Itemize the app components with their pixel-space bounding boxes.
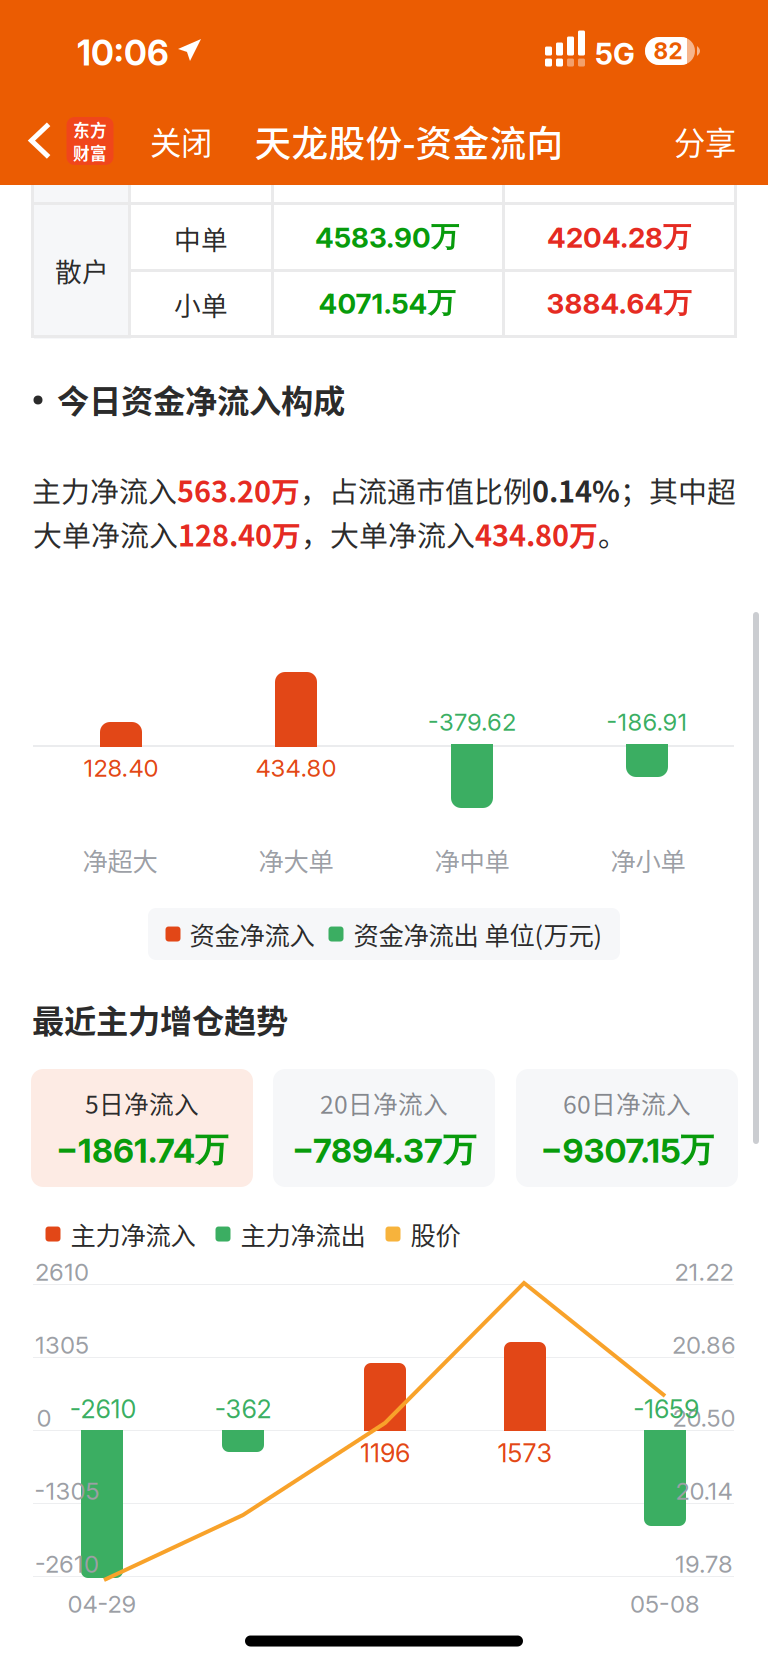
staticText: 60日净流入 [563,1085,691,1121]
button[interactable]: 60日净流入 [516,1069,738,1187]
staticText: 5G [595,36,635,72]
staticText: 20.50 [672,1403,735,1432]
staticText: 净中单 [434,842,509,878]
staticText: 主力净流入 [70,1216,195,1252]
staticText: 分享 [674,118,736,164]
staticText: ；其中超 [620,469,736,511]
staticText: −7894.37万 [292,1129,476,1171]
staticText: -2610 [35,1549,99,1578]
staticText: 21.22 [674,1257,733,1286]
staticText: 天龙股份-资金流向 [254,114,563,168]
staticText: 20.14 [675,1476,732,1505]
staticText: 128.40 [83,753,158,782]
staticText: 04-29 [67,1589,136,1618]
staticText: 净大单 [258,842,333,878]
button[interactable]: 20日净流入 [273,1069,495,1187]
staticText: 净小单 [610,842,685,878]
staticText: 1196 [360,1438,410,1468]
staticText: 资金净流入 [189,916,314,952]
button[interactable]: 5日净流入 [31,1069,253,1187]
staticText: ，占流通市值比例 [300,469,532,511]
staticText: -379.62 [428,707,516,736]
staticText: -2610 [69,1394,136,1424]
staticText: 股价 [410,1216,460,1252]
staticText: 东方 [73,117,107,141]
staticText: 关闭 [150,118,212,164]
staticText: 0 [36,1403,51,1432]
staticText: 。 [598,513,627,555]
button[interactable]: 关闭 [141,112,221,170]
staticText: 中单 [174,219,228,257]
staticText: 主力净流入 [32,469,177,511]
staticText: −9307.15万 [540,1129,713,1171]
staticText: 20.86 [672,1330,736,1359]
staticText: -362 [214,1394,271,1424]
staticText: 1573 [497,1438,552,1468]
button[interactable]: 分享 [665,112,745,170]
staticText: 资金净流出 单位(万元) [353,916,602,952]
staticText: 3884.64万 [546,285,691,321]
staticText: 主力净流出 [240,1216,365,1252]
staticText: 小单 [174,285,228,323]
staticText: 4071.54万 [318,285,455,321]
staticText: 434.80万 [475,513,598,555]
staticText: 10:06 [77,32,169,74]
staticText: −1861.74万 [56,1129,228,1171]
staticText: -1305 [34,1476,99,1505]
staticText: 434.80 [255,753,336,782]
staticText: 散户 [55,251,109,289]
staticText: 20日净流入 [320,1085,448,1121]
staticText: 财富 [73,140,107,165]
staticText: 最近主力增仓趋势 [32,996,288,1042]
staticText: 1305 [35,1330,89,1359]
staticText: 今日资金净流入构成 [57,376,345,422]
staticText: 128.40万 [178,513,301,555]
staticText: 4204.28万 [547,219,691,255]
staticText: 0.14% [532,469,620,511]
staticText: 大单净流入 [33,513,178,555]
staticText: ，大单净流入 [301,513,475,555]
staticText: 19.78 [675,1549,733,1578]
button[interactable]: 返回 [20,112,66,170]
staticText: -186.91 [606,707,687,736]
staticText: 5日净流入 [85,1085,199,1121]
staticText: 2610 [35,1257,89,1286]
staticText: -1659 [633,1394,699,1424]
staticText: 82 [653,37,682,65]
staticText: 4583.90万 [315,219,459,255]
staticText: 05-08 [630,1589,700,1618]
staticText: 净超大 [82,842,157,878]
staticText: 563.20万 [177,469,300,511]
